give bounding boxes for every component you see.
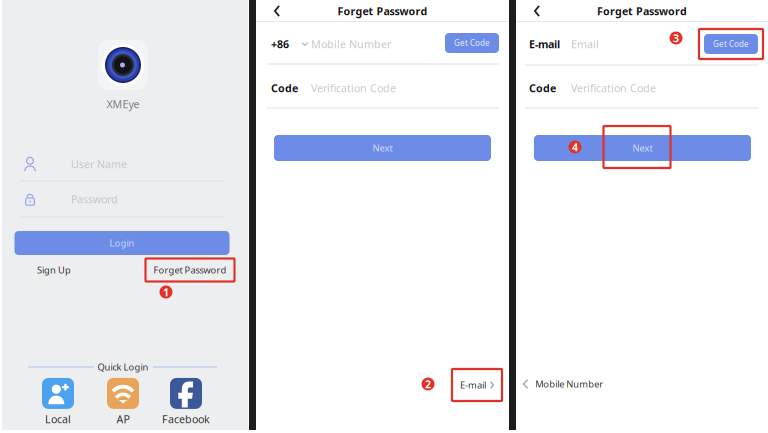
button[interactable]: Sign Up — [26, 259, 82, 281]
button[interactable]: AP — [107, 378, 139, 426]
staticText: 2 — [425, 377, 431, 391]
staticText: Local — [45, 412, 71, 426]
button[interactable]: Local — [42, 378, 74, 426]
staticText: Verification Code — [571, 81, 656, 95]
staticText: Forget Password — [597, 4, 687, 18]
staticText: Mobile Number — [311, 37, 391, 51]
staticText: Next — [372, 142, 392, 154]
button[interactable]: Next — [274, 135, 491, 161]
staticText: Forget Password — [337, 4, 427, 18]
staticText: Password — [71, 192, 118, 206]
staticText: Get Code — [454, 38, 490, 48]
staticText: Mobile Number — [535, 378, 603, 390]
staticText: 1 — [163, 285, 169, 299]
staticText: Verification Code — [311, 81, 396, 95]
staticText: Next — [632, 142, 652, 154]
staticText: Forget Password — [153, 264, 226, 276]
button[interactable]: Back — [516, 0, 558, 22]
button[interactable]: Login — [14, 231, 229, 255]
button[interactable]: Get Code — [445, 33, 499, 53]
button[interactable]: Forget Password — [145, 258, 234, 281]
staticText: Quick Login — [97, 361, 148, 373]
button[interactable]: Facebook — [162, 378, 210, 426]
staticText: Login — [109, 237, 134, 249]
button[interactable]: Next — [534, 135, 751, 161]
button[interactable]: Back — [256, 0, 298, 22]
staticText: 4 — [572, 140, 578, 154]
staticText: Email — [571, 37, 599, 51]
staticText: User Name — [71, 157, 127, 171]
staticText: E-mail — [529, 37, 560, 51]
staticText: Sign Up — [37, 264, 71, 276]
staticText: AP — [116, 412, 129, 426]
staticText: 3 — [673, 31, 679, 45]
staticText: E-mail — [460, 379, 486, 391]
staticText: Code — [271, 81, 298, 95]
button[interactable]: Get Code — [700, 30, 762, 58]
staticText: +86 — [271, 37, 289, 51]
button[interactable]: Mobile Number — [523, 373, 603, 395]
staticText: Facebook — [162, 412, 210, 426]
staticText: Get Code — [713, 39, 749, 49]
button[interactable]: E-mail — [452, 369, 502, 401]
staticText: Code — [529, 81, 556, 95]
staticText: XMEye — [106, 97, 139, 111]
